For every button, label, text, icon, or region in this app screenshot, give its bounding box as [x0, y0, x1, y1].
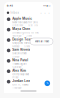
staticText: ▪▪▪ — [43, 4, 46, 7]
staticText: ▭ — [48, 4, 50, 7]
button[interactable]: Jordan Lee — [4, 78, 53, 89]
staticText: Apple Music — [12, 17, 32, 20]
button[interactable]: Alex Kim — [4, 68, 53, 78]
button[interactable]: Apple Music — [4, 16, 53, 26]
button[interactable]: More — [40, 11, 50, 14]
button[interactable]: Nina Patel — [4, 58, 53, 68]
staticText: 9:41 — [7, 4, 13, 7]
staticText: Saturday — [12, 66, 21, 68]
staticText: Mark all read — [34, 40, 48, 43]
staticText: Jordan Lee — [12, 79, 30, 83]
staticText: Thanks again — [12, 62, 26, 65]
staticText: Sam Rivera — [12, 48, 30, 52]
staticText: Maya Chen — [12, 27, 30, 31]
staticText: • • • — [40, 11, 50, 14]
staticText: Shipped the build — [12, 41, 35, 45]
staticText: Sounds good to me — [12, 31, 38, 34]
staticText: Sunday — [12, 55, 19, 58]
staticText: Thursday — [12, 86, 21, 89]
staticText: See you then — [12, 52, 26, 55]
staticText: On my way over — [12, 73, 29, 76]
staticText: New releases for you — [12, 21, 37, 24]
button[interactable]: Inbox — [7, 11, 19, 14]
staticText: Nina Patel — [12, 58, 28, 62]
button[interactable]: Maya Chen — [4, 26, 53, 37]
button[interactable]: Design Team — [4, 37, 53, 47]
button[interactable]: Compose — [44, 80, 50, 86]
staticText: ◗ — [47, 4, 48, 7]
staticText: Alex Kim — [12, 69, 26, 72]
staticText: Got it, thanks — [12, 83, 28, 86]
staticText: ✎ — [46, 82, 48, 85]
staticText: Friday — [12, 76, 18, 79]
staticText: Design Team — [12, 37, 33, 41]
staticText: Inbox — [10, 11, 19, 14]
staticText: Monday · 5 new — [12, 45, 30, 48]
staticText: Listen now · 9:30 AM — [12, 24, 38, 27]
button[interactable]: Mark all read — [30, 38, 53, 45]
button[interactable]: Sam Rivera — [4, 47, 53, 58]
staticText: Yesterday · 2 new — [12, 34, 32, 37]
